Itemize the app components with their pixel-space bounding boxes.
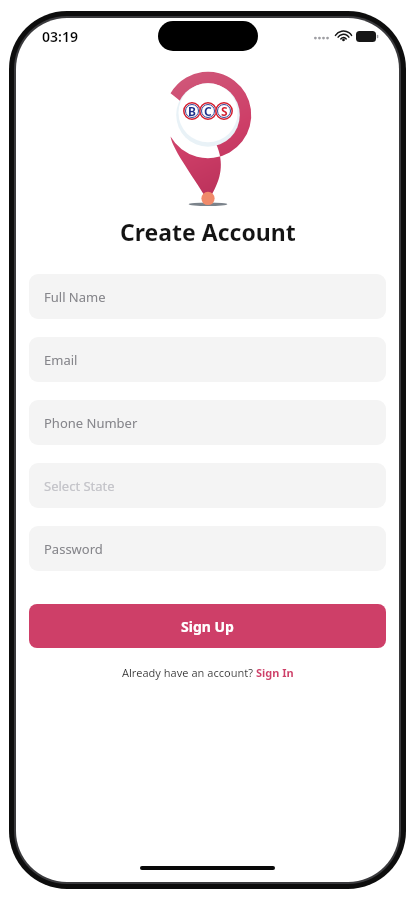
staticText: 03:19 xyxy=(42,27,78,46)
button[interactable]: Full Name xyxy=(29,274,386,319)
staticText: Create Account xyxy=(120,216,296,247)
staticText: B xyxy=(188,103,196,119)
button[interactable]: Phone Number xyxy=(29,400,386,445)
button[interactable]: Email xyxy=(29,337,386,382)
button[interactable]: Select State xyxy=(29,463,386,508)
staticText: Email xyxy=(44,351,78,369)
button[interactable]: Sign Up xyxy=(29,604,386,648)
staticText: Select State xyxy=(44,477,115,495)
button[interactable]: Sign In xyxy=(256,665,294,680)
staticText: Sign In xyxy=(256,665,294,680)
staticText: Full Name xyxy=(44,288,106,306)
staticText: Sign Up xyxy=(181,617,234,636)
staticText: Password xyxy=(44,540,103,558)
staticText: C xyxy=(204,103,212,119)
staticText: Already have an account? xyxy=(122,665,256,680)
staticText: Phone Number xyxy=(44,414,138,432)
staticText: S xyxy=(221,103,228,119)
button[interactable]: Password xyxy=(29,526,386,571)
other: BCS logo xyxy=(162,66,254,208)
